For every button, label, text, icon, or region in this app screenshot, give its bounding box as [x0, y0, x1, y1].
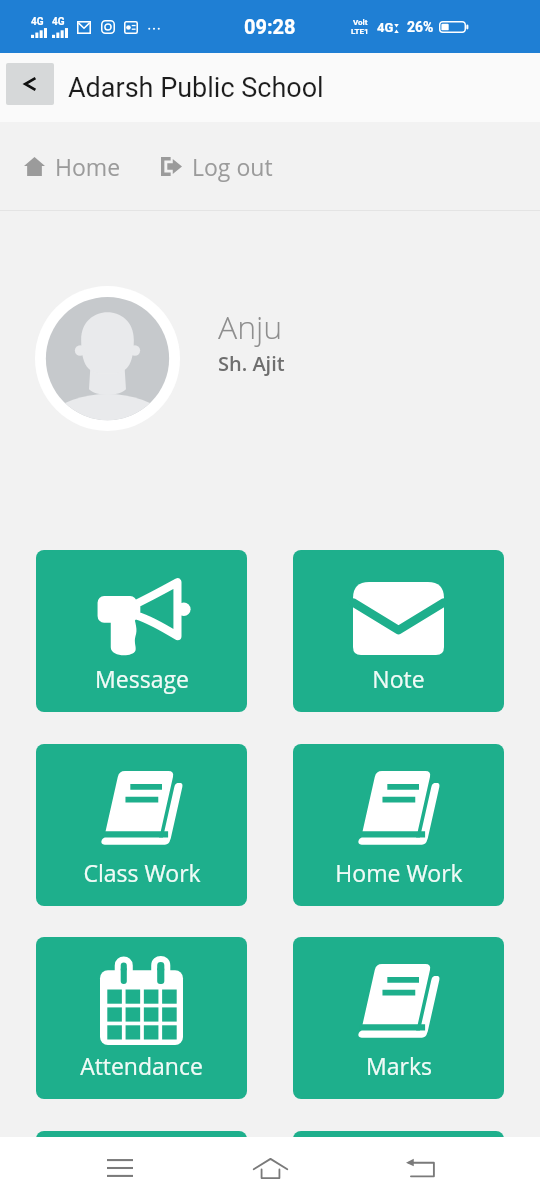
staticText: Log out [192, 151, 273, 182]
staticText: 4G [31, 16, 44, 28]
staticText: 4G [377, 20, 394, 35]
staticText: Attendance [80, 1050, 203, 1081]
button[interactable]: Home [20, 143, 125, 190]
button[interactable] [293, 1131, 504, 1200]
button[interactable]: Note [293, 550, 504, 712]
button[interactable]: Class Work [36, 744, 247, 906]
button[interactable]: Message [36, 550, 247, 712]
staticText: LTE1 [351, 27, 369, 36]
button[interactable]: Marks [293, 937, 504, 1099]
staticText: Home Work [335, 857, 463, 888]
staticText: Class Work [83, 857, 201, 888]
staticText: 26% [407, 19, 434, 35]
staticText: 09:28 [244, 15, 296, 38]
staticText: Volt [353, 18, 368, 27]
button[interactable]: Back [390, 1137, 452, 1199]
staticText: Home [55, 151, 121, 182]
button[interactable]: Back [6, 63, 54, 105]
button[interactable]: Recent apps [89, 1137, 151, 1199]
button[interactable]: Home Work [293, 744, 504, 906]
button[interactable]: Log out [157, 143, 277, 190]
staticText: Message [95, 663, 189, 694]
staticText: Adarsh Public School [68, 72, 324, 104]
staticText: Anju [218, 305, 283, 349]
staticText: Marks [366, 1050, 432, 1081]
staticText: Sh. Ajit [218, 350, 285, 377]
staticText: 4G [52, 16, 65, 28]
button[interactable]: Attendance [36, 937, 247, 1099]
staticText: Note [372, 663, 425, 694]
button[interactable]: Home [239, 1137, 301, 1199]
button[interactable] [36, 1131, 247, 1200]
